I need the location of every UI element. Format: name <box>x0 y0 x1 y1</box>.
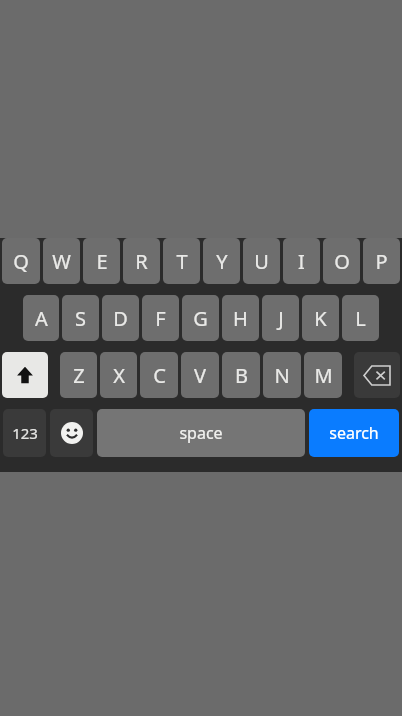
button[interactable]: Shift <box>2 352 48 398</box>
staticText: V <box>194 362 206 389</box>
button[interactable]: J <box>262 295 299 341</box>
staticText: Y <box>216 248 228 275</box>
button[interactable]: P <box>363 238 400 284</box>
staticText: J <box>278 305 284 332</box>
staticText: C <box>153 362 166 389</box>
staticText: T <box>176 248 188 275</box>
button[interactable]: B <box>222 352 260 398</box>
button[interactable]: X <box>100 352 137 398</box>
staticText: M <box>314 362 333 389</box>
button[interactable]: Emoji <box>50 409 93 457</box>
button[interactable]: N <box>263 352 301 398</box>
staticText: H <box>233 305 248 332</box>
button[interactable]: T <box>163 238 200 284</box>
button[interactable]: R <box>123 238 160 284</box>
staticText: R <box>135 248 148 275</box>
staticText: F <box>155 305 166 332</box>
staticText: A <box>35 305 48 332</box>
staticText: space <box>179 422 223 444</box>
staticText: N <box>274 362 290 389</box>
staticText: G <box>193 305 208 332</box>
staticText: U <box>254 248 269 275</box>
button[interactable]: V <box>181 352 219 398</box>
button[interactable]: H <box>222 295 259 341</box>
staticText: S <box>75 305 86 332</box>
button[interactable]: 123 <box>3 409 46 457</box>
button[interactable]: Backspace <box>354 352 400 398</box>
button[interactable]: Z <box>60 352 97 398</box>
staticText: search <box>329 422 379 444</box>
button[interactable]: M <box>304 352 342 398</box>
button[interactable]: O <box>323 238 360 284</box>
staticText: O <box>334 248 350 275</box>
staticText: L <box>355 305 366 332</box>
staticText: W <box>52 248 71 275</box>
button[interactable]: A <box>23 295 59 341</box>
button[interactable]: Y <box>203 238 240 284</box>
staticText: 123 <box>12 423 38 443</box>
button[interactable]: L <box>342 295 379 341</box>
staticText: P <box>375 248 388 275</box>
button[interactable]: C <box>140 352 178 398</box>
staticText: E <box>96 248 108 275</box>
button[interactable]: space <box>97 409 305 457</box>
button[interactable]: I <box>283 238 320 284</box>
staticText: I <box>298 248 305 275</box>
button[interactable]: G <box>182 295 219 341</box>
button[interactable]: S <box>62 295 99 341</box>
button[interactable]: Q <box>2 238 40 284</box>
staticText: B <box>235 362 248 389</box>
button[interactable]: F <box>142 295 179 341</box>
button[interactable]: W <box>43 238 80 284</box>
button[interactable]: E <box>83 238 120 284</box>
staticText: Q <box>13 248 29 275</box>
staticText: Z <box>73 362 85 389</box>
button[interactable]: D <box>102 295 139 341</box>
staticText: X <box>113 362 125 389</box>
button[interactable]: U <box>243 238 280 284</box>
button[interactable]: search <box>309 409 399 457</box>
staticText: D <box>113 305 128 332</box>
staticText: K <box>314 305 327 332</box>
button[interactable]: K <box>302 295 339 341</box>
